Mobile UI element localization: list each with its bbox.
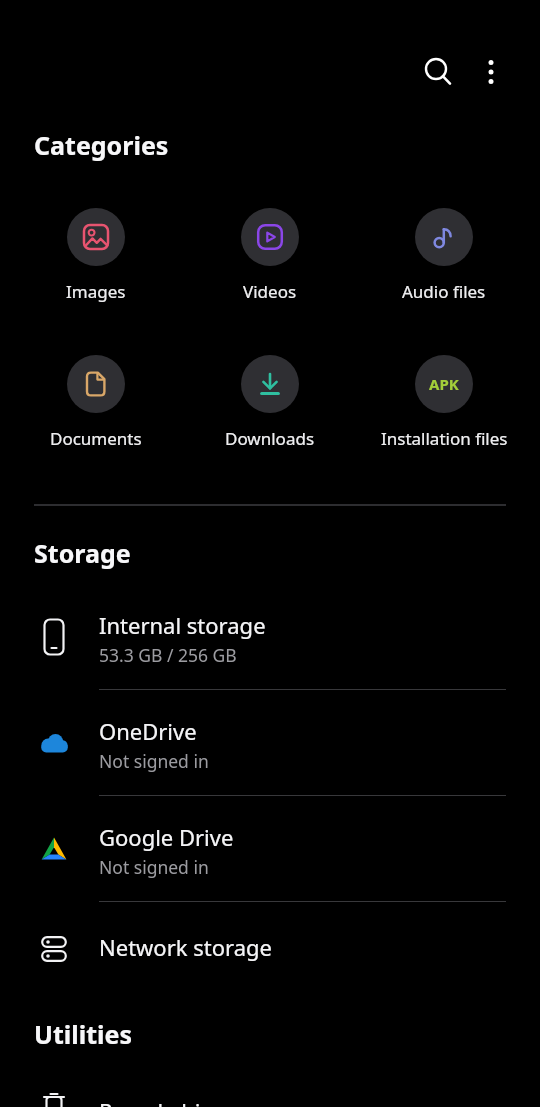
staticText: Recycle bin — [99, 1096, 215, 1107]
staticText: Videos — [243, 280, 297, 303]
button[interactable]: Recycle bin — [0, 1076, 540, 1107]
button[interactable]: Documents — [9, 355, 183, 450]
staticText: APK — [429, 374, 459, 394]
staticText: Categories — [34, 128, 169, 162]
button[interactable]: Videos — [183, 208, 357, 303]
staticText: Audio files — [402, 280, 486, 303]
staticText: Documents — [50, 427, 142, 450]
staticText: Not signed in — [99, 749, 209, 773]
staticText: Google Drive — [99, 822, 234, 852]
button[interactable]: Network storage — [0, 902, 540, 996]
staticText: Storage — [34, 536, 131, 570]
button[interactable]: Audio files — [357, 208, 531, 303]
staticText: Not signed in — [99, 855, 209, 879]
button[interactable]: Google Drive — [0, 796, 540, 902]
button[interactable]: OneDrive — [0, 690, 540, 796]
staticText: Installation files — [381, 427, 508, 450]
button[interactable]: Internal storage — [0, 584, 540, 690]
button[interactable] — [414, 48, 462, 96]
staticText: Images — [66, 280, 126, 303]
button[interactable] — [467, 48, 515, 96]
button[interactable]: Downloads — [183, 355, 357, 450]
staticText: Downloads — [225, 427, 315, 450]
button[interactable]: Images — [9, 208, 183, 303]
button[interactable]: APK — [357, 355, 531, 450]
staticText: Utilities — [34, 1017, 132, 1051]
staticText: 53.3 GB / 256 GB — [99, 643, 237, 667]
staticText: Network storage — [99, 932, 272, 962]
staticText: Internal storage — [99, 610, 266, 640]
staticText: OneDrive — [99, 716, 197, 746]
